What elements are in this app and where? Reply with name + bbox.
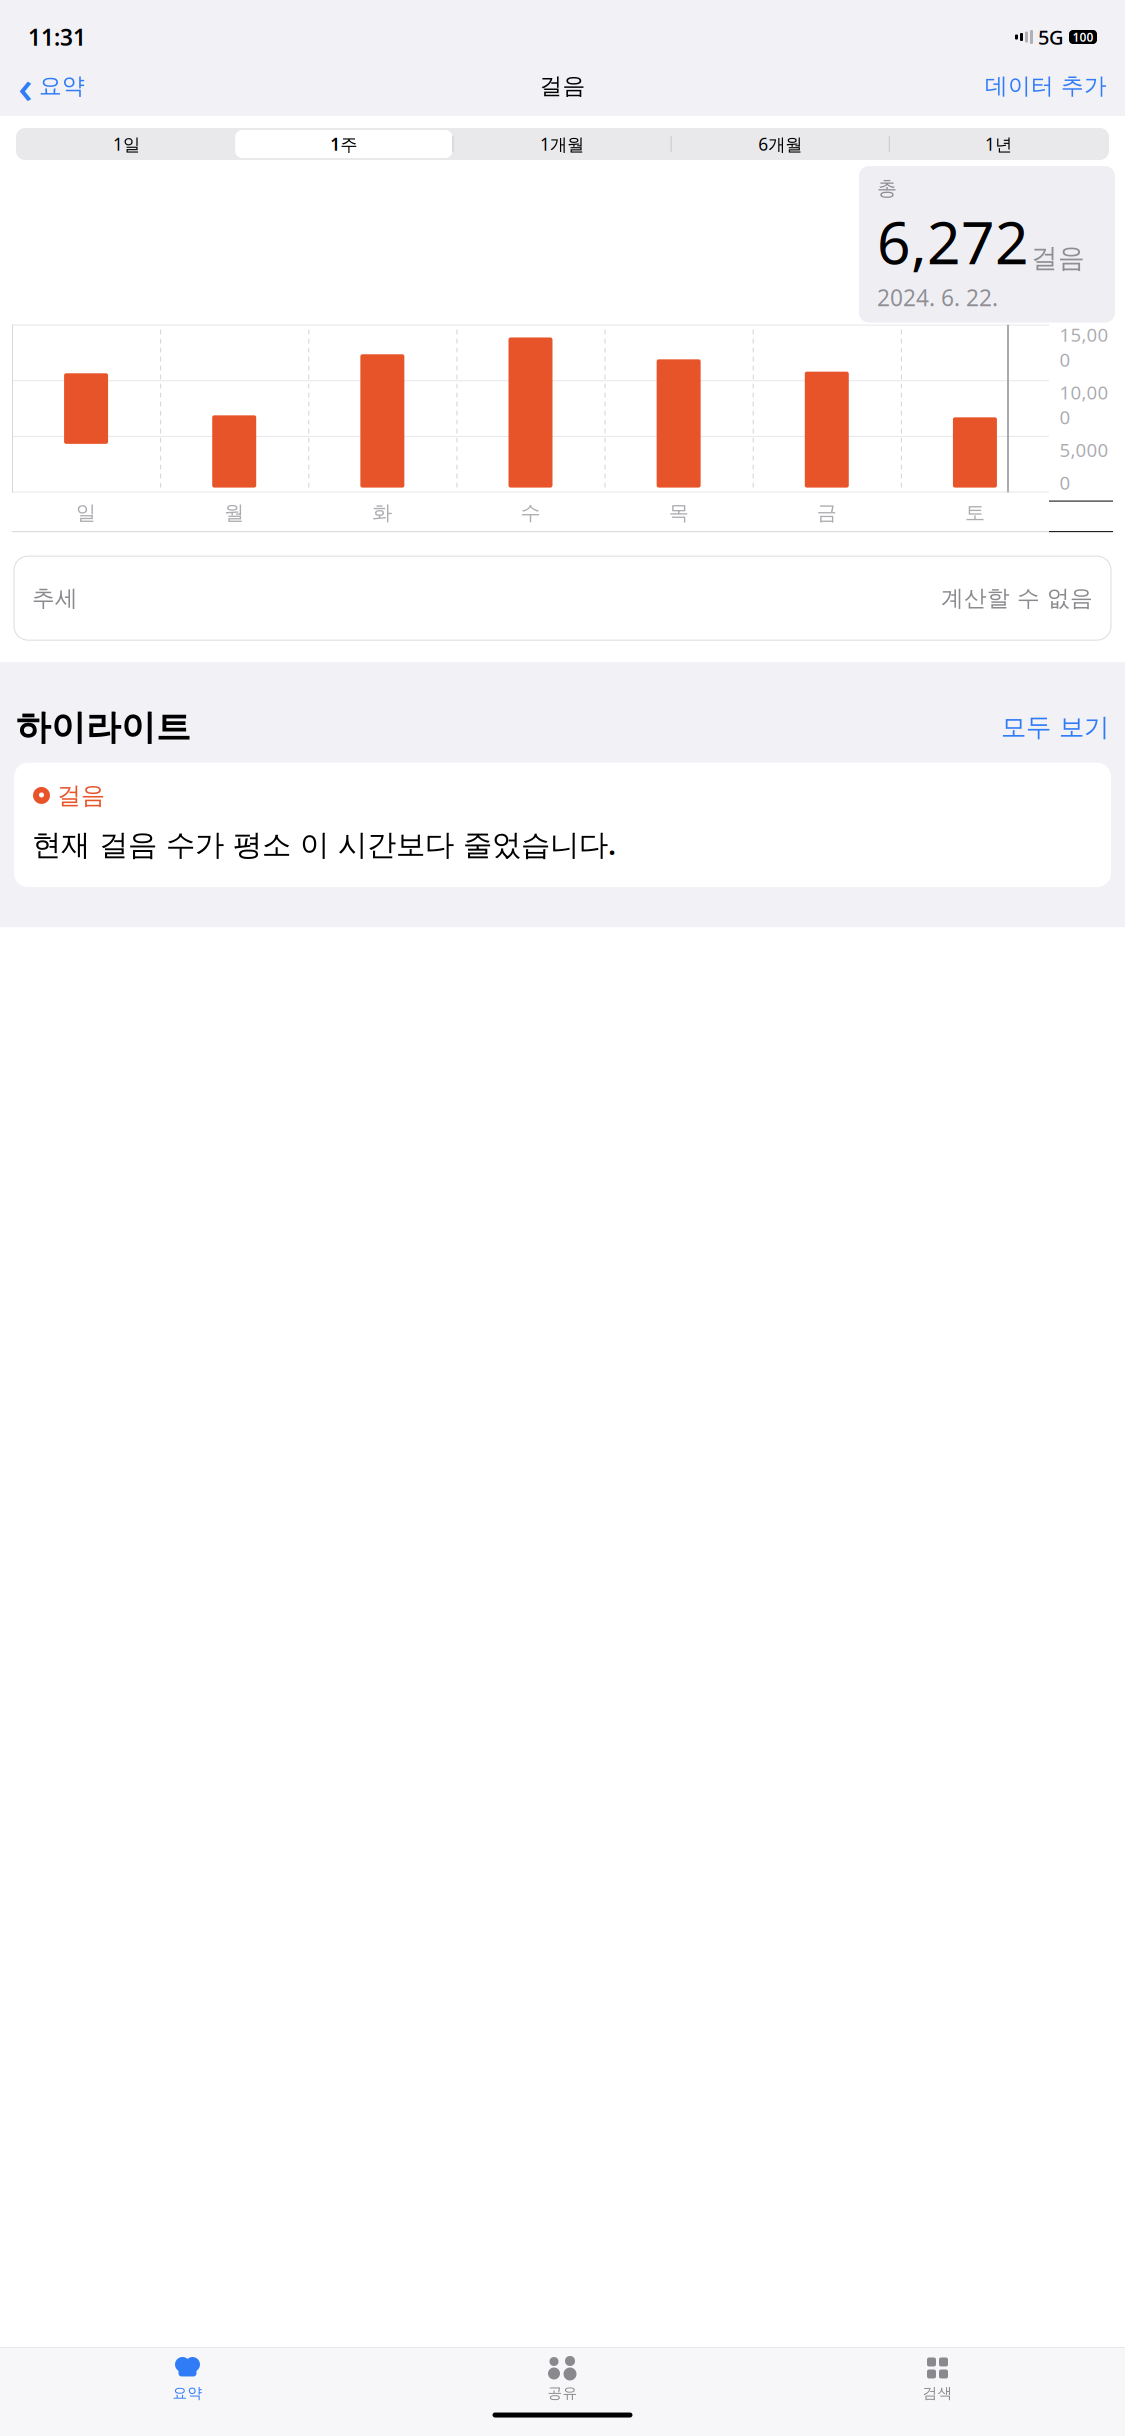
button[interactable]: 공유 <box>375 2348 750 2402</box>
staticText: 모두 보기 <box>1001 712 1109 743</box>
staticText: 15,000 <box>1059 322 1108 372</box>
staticText: 2024. 6. 22. <box>877 282 998 313</box>
button[interactable]: ‹ <box>10 50 93 122</box>
staticText: 금 <box>817 501 837 525</box>
staticText: 1주 <box>330 132 357 155</box>
button[interactable]: 검색 <box>750 2348 1125 2402</box>
staticText: 공유 <box>547 2384 577 2402</box>
button[interactable]: 추세 <box>14 556 1111 640</box>
staticText: 6,272 <box>877 203 1029 280</box>
button[interactable]: 1년 <box>890 130 1107 158</box>
staticText: 걸음 <box>539 72 585 100</box>
button[interactable]: 1개월 <box>453 130 671 158</box>
staticText: 총 <box>877 176 897 201</box>
button[interactable]: 요약 <box>0 2348 375 2402</box>
staticText: 월 <box>224 501 244 525</box>
staticText: 걸음 <box>57 781 105 810</box>
staticText: 계산할 수 없음 <box>941 584 1093 612</box>
staticText: 요약 <box>39 72 85 100</box>
button[interactable]: 걸음 <box>14 763 1111 887</box>
staticText: 토 <box>965 501 985 525</box>
button[interactable]: 1일 <box>18 130 235 158</box>
staticText: 현재 걸음 수가 평소 이 시간보다 줄었습니다. <box>32 824 616 863</box>
staticText: 추세 <box>32 584 78 612</box>
staticText: 화 <box>372 501 392 525</box>
staticText: 데이터 추가 <box>985 72 1107 100</box>
staticText: 검색 <box>922 2384 952 2402</box>
staticText: 1일 <box>113 132 140 155</box>
button[interactable]: 모두 보기 <box>1001 712 1109 743</box>
staticText: 요약 <box>172 2384 202 2402</box>
staticText: 6개월 <box>758 132 802 155</box>
staticText: 100 <box>1072 29 1093 45</box>
staticText: 1년 <box>985 132 1012 155</box>
staticText: 수 <box>520 501 540 525</box>
staticText: 1개월 <box>540 132 584 155</box>
staticText: 5G <box>1038 24 1064 50</box>
button[interactable]: 6개월 <box>672 130 889 158</box>
staticText: 걸음 <box>1031 242 1085 274</box>
staticText: 목 <box>669 501 689 525</box>
staticText: 5,000 <box>1059 437 1108 462</box>
button[interactable]: 1주 <box>235 130 452 158</box>
staticText: 일 <box>76 501 96 525</box>
button[interactable]: 데이터 추가 <box>977 66 1115 106</box>
staticText: 11:31 <box>28 22 86 52</box>
staticText: 하이라이트 <box>16 706 191 749</box>
staticText: ‹ <box>18 56 33 116</box>
staticText: 10,000 <box>1059 380 1108 429</box>
staticText: 0 <box>1059 470 1070 495</box>
